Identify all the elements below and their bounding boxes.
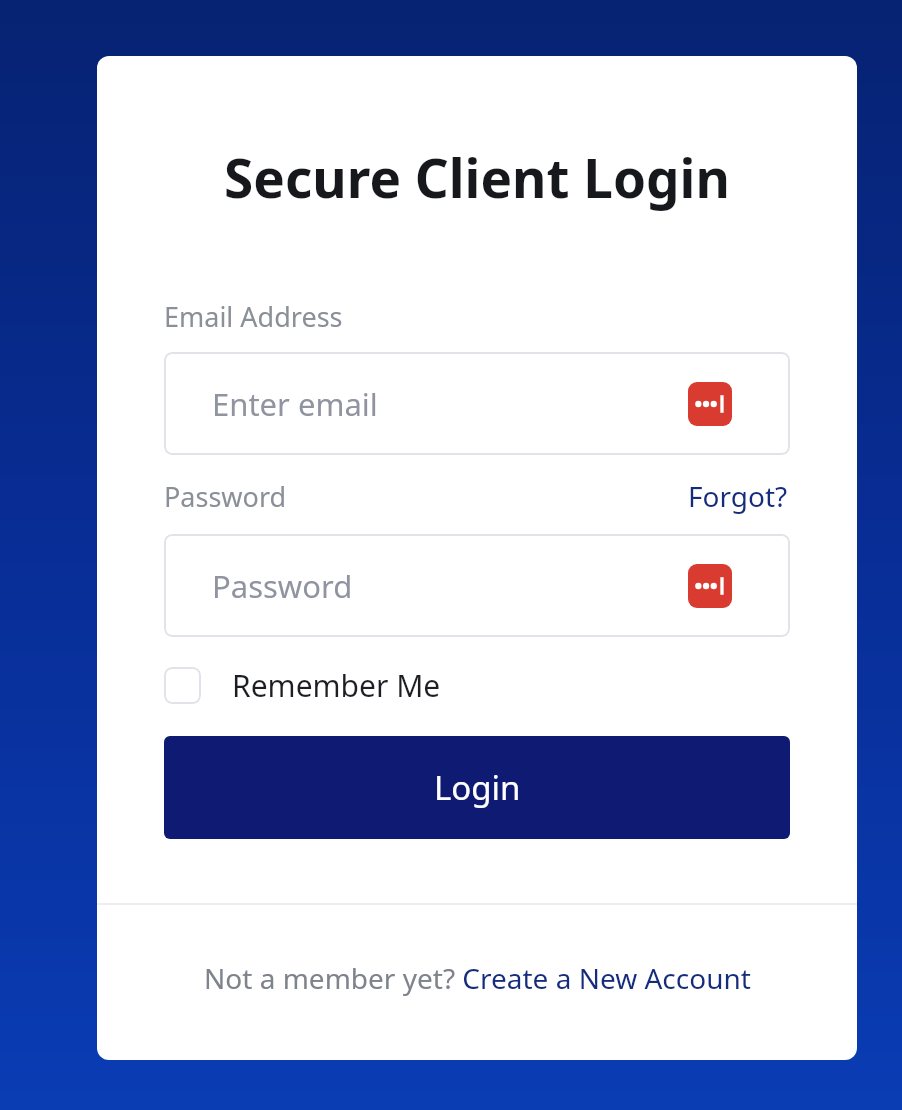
button[interactable]: Remember Me	[164, 659, 441, 712]
staticText: Not a member yet? Create a New Account	[204, 959, 751, 997]
staticText: Password	[212, 565, 353, 607]
button[interactable]: Autofill password	[688, 564, 732, 608]
staticText: Enter email	[212, 383, 378, 425]
button[interactable]: Not a member yet? Create a New Account	[200, 955, 755, 1001]
staticText: Secure Client Login	[224, 141, 730, 213]
button[interactable]: Login	[164, 736, 790, 839]
button[interactable]: Autofill password	[688, 382, 732, 426]
button[interactable]: Password	[164, 534, 790, 637]
button[interactable]: Enter email	[164, 352, 790, 455]
staticText: Email Address	[164, 298, 343, 335]
staticText: Login	[434, 765, 521, 810]
staticText: Forgot?	[688, 477, 788, 515]
button[interactable]: Forgot?	[686, 475, 790, 517]
staticText: Password	[164, 478, 287, 515]
staticText: Remember Me	[232, 665, 441, 706]
